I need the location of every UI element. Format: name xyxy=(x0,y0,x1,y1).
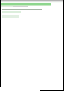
button[interactable] xyxy=(0,0,64,1)
button[interactable]: Header banner xyxy=(0,3,51,5)
